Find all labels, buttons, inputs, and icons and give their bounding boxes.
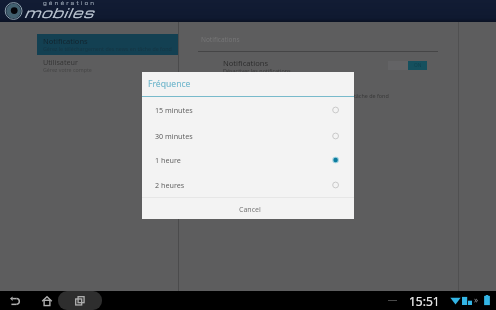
staticText: 15 minutes <box>155 105 193 115</box>
button[interactable]: 15 minutes <box>142 97 354 122</box>
button[interactable]: Cancel <box>142 198 354 219</box>
button[interactable]: 2 heures <box>142 172 354 197</box>
staticText: mobiles <box>24 3 94 21</box>
staticText: Notifications <box>201 35 240 44</box>
staticText: ON <box>414 62 422 69</box>
button[interactable]: Recent apps <box>58 291 102 310</box>
staticText: Notifications <box>223 58 269 68</box>
staticText: 30 minutes <box>155 131 193 141</box>
staticText: » <box>474 294 479 305</box>
staticText: Désactiver les notifications <box>223 67 291 74</box>
staticText: Fréquence <box>148 78 191 90</box>
button[interactable]: Fréquence <box>198 82 458 106</box>
staticText: Cancel <box>239 205 261 215</box>
staticText: 2 heures <box>155 180 185 190</box>
button[interactable]: 1 heure <box>142 147 354 172</box>
staticText: Gérez la fréquence de téléchargement des… <box>223 92 389 99</box>
button[interactable]: Utilisateur <box>37 55 178 76</box>
staticText: génération <box>43 0 97 7</box>
staticText: Gérez le téléchargement des news en tâch… <box>43 45 172 52</box>
button[interactable]: 30 minutes <box>142 123 354 148</box>
button[interactable]: Notifications <box>198 57 458 81</box>
staticText: Notifications <box>43 36 88 46</box>
staticText: 1 heure <box>155 155 181 165</box>
button[interactable]: Back <box>9 295 21 307</box>
staticText: Utilisateur <box>43 57 78 67</box>
staticText: Gérez votre compte <box>43 66 92 73</box>
button[interactable]: Notifications <box>37 34 178 55</box>
staticText: 15:51 <box>409 293 440 309</box>
button[interactable]: Home <box>41 295 53 307</box>
